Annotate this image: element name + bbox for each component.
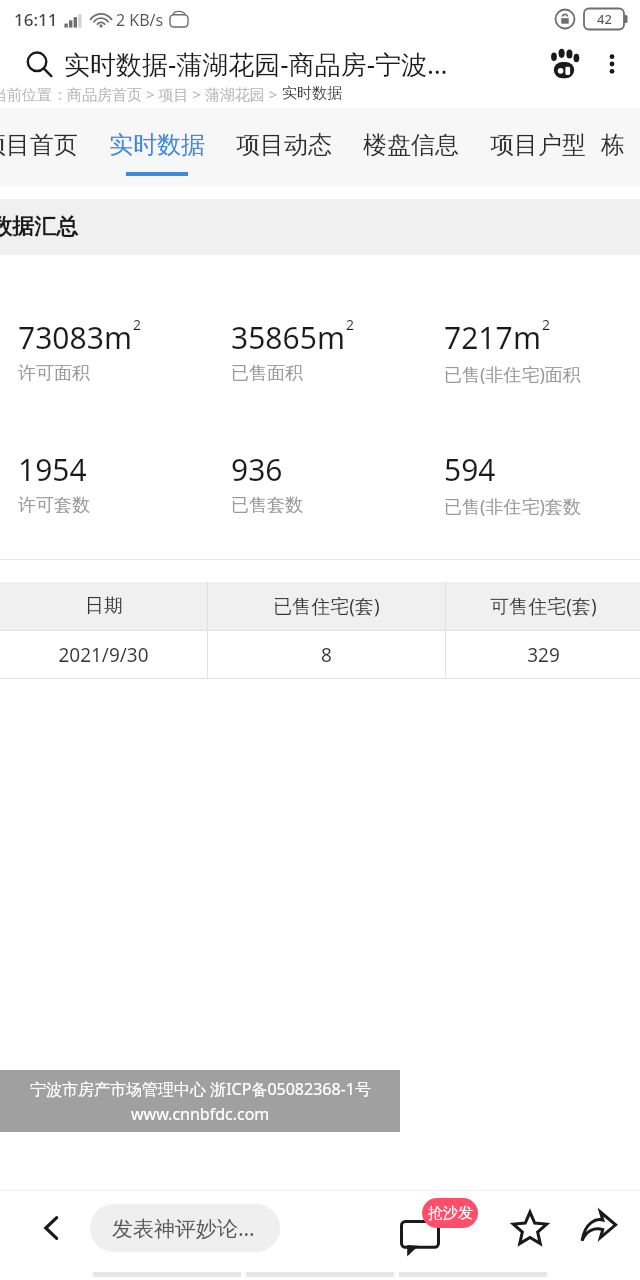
button[interactable]: 项目首页 <box>0 108 93 186</box>
staticText: 已售(非住宅)套数 <box>444 494 581 519</box>
staticText: 已售(非住宅)面积 <box>444 362 581 387</box>
staticText: 实时数据 <box>109 130 205 160</box>
button[interactable]: More options <box>588 40 636 88</box>
button[interactable]: Share <box>572 1202 624 1254</box>
staticText: 数据汇总 <box>0 213 78 241</box>
button[interactable]: 实时数据 <box>93 108 220 186</box>
staticText: m <box>513 317 542 358</box>
button[interactable]: 项目户型 <box>474 108 601 186</box>
button[interactable]: Search <box>22 47 56 81</box>
staticText: 2 KB/s <box>116 9 164 31</box>
staticText: 329 <box>527 642 560 668</box>
staticText: 936 <box>231 449 283 490</box>
staticText: 1954 <box>18 449 87 490</box>
button[interactable]: 栋 <box>601 108 606 186</box>
staticText: 宁波市房产市场管理中心 浙ICP备05082368-1号 <box>30 1078 371 1100</box>
staticText: 楼盘信息 <box>363 130 459 160</box>
button[interactable]: Baidu <box>540 40 588 88</box>
staticText: m <box>104 317 133 358</box>
staticText: 已售套数 <box>231 494 303 517</box>
staticText: 594 <box>444 449 496 490</box>
staticText: 7217 <box>444 317 513 358</box>
staticText: 项目动态 <box>236 130 332 160</box>
button[interactable]: Comments <box>400 1198 478 1258</box>
staticText: 栋 <box>601 130 606 160</box>
staticText: 发表神评妙论… <box>112 1214 255 1243</box>
staticText: 2021/9/30 <box>58 642 149 668</box>
staticText: 35865 <box>231 317 317 358</box>
button[interactable]: Back <box>30 1206 74 1250</box>
staticText: 项目户型 <box>490 130 586 160</box>
staticText: 8 <box>321 642 332 668</box>
staticText: 实时数据 <box>282 84 342 102</box>
staticText: 已售面积 <box>231 362 303 385</box>
staticText: 2 <box>542 315 551 334</box>
staticText: 抢沙发 <box>428 1204 473 1223</box>
staticText: 2 <box>133 315 142 334</box>
button[interactable]: 项目动态 <box>220 108 347 186</box>
staticText: 73083 <box>18 317 104 358</box>
staticText: 实时数据-蒲湖花园-商品房-宁波… <box>64 46 448 82</box>
staticText: 当前位置：商品房首页 > 项目 > 蒲湖花园 > <box>0 84 282 102</box>
staticText: 许可套数 <box>18 494 90 517</box>
button[interactable]: Favorite <box>504 1202 556 1254</box>
staticText: 2 <box>346 315 355 334</box>
staticText: 日期 <box>85 594 123 618</box>
staticText: 已售住宅(套) <box>273 593 380 619</box>
staticText: 项目首页 <box>0 130 78 160</box>
button[interactable]: 实时数据-蒲湖花园-商品房-宁波… <box>64 46 540 82</box>
button[interactable]: 发表神评妙论… <box>90 1204 280 1252</box>
staticText: www.cnnbfdc.com <box>131 1103 270 1125</box>
staticText: 42 <box>597 10 612 28</box>
button[interactable]: 楼盘信息 <box>347 108 474 186</box>
staticText: 许可面积 <box>18 362 90 385</box>
staticText: 可售住宅(套) <box>490 593 597 619</box>
staticText: m <box>317 317 346 358</box>
staticText: 16:11 <box>14 8 58 31</box>
